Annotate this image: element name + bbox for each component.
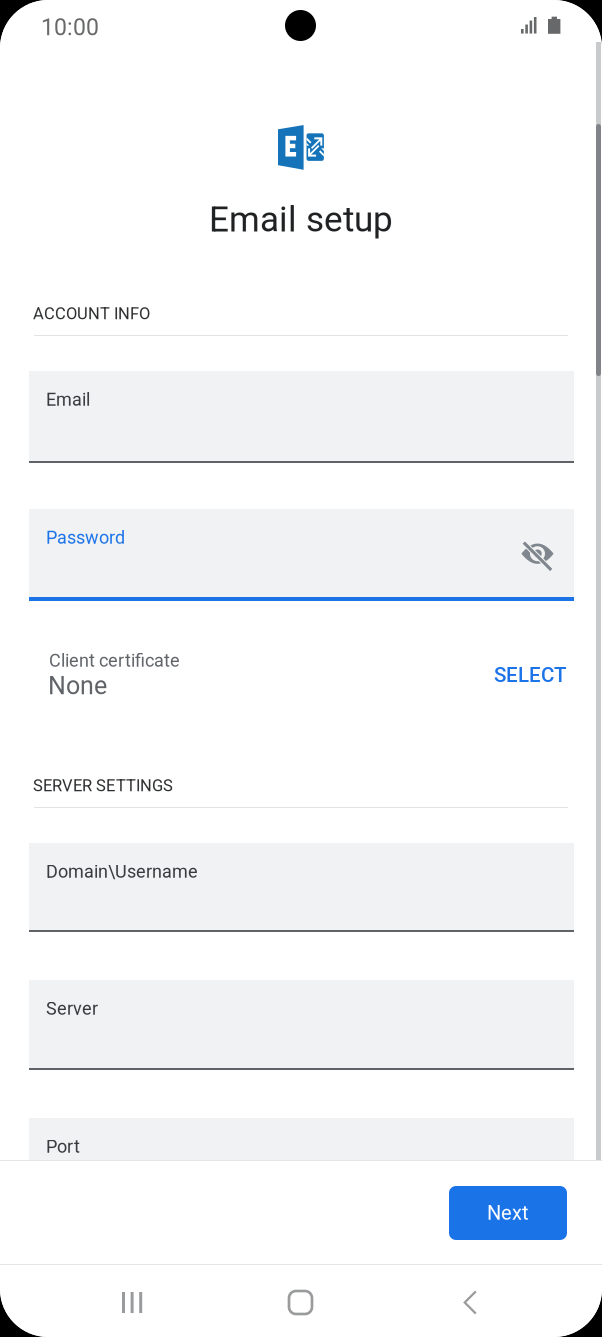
- staticText: SERVER SETTINGS: [33, 776, 173, 795]
- staticText: Email: [46, 389, 90, 410]
- staticText: Email setup: [209, 199, 393, 240]
- button[interactable]: SELECT: [482, 655, 578, 695]
- staticText: 10:00: [41, 14, 99, 41]
- staticText: Port: [46, 1136, 80, 1157]
- button[interactable]: Recent apps: [94, 1274, 170, 1331]
- button[interactable]: Next: [449, 1186, 567, 1240]
- button[interactable]: Password: [29, 509, 574, 601]
- staticText: Server: [46, 998, 98, 1019]
- staticText: Next: [487, 1201, 529, 1225]
- button[interactable]: Email: [29, 371, 574, 463]
- button[interactable]: Domain\Username: [29, 843, 574, 932]
- staticText: Client certificate: [49, 650, 180, 671]
- staticText: Domain\Username: [46, 861, 198, 882]
- button[interactable]: Home: [261, 1274, 340, 1331]
- button[interactable]: Port: [29, 1118, 574, 1208]
- staticText: None: [48, 671, 107, 700]
- staticText: SELECT: [494, 663, 566, 687]
- button[interactable]: Back: [435, 1274, 505, 1331]
- button[interactable]: Server: [29, 980, 574, 1070]
- staticText: ACCOUNT INFO: [33, 304, 150, 323]
- staticText: Password: [46, 527, 125, 548]
